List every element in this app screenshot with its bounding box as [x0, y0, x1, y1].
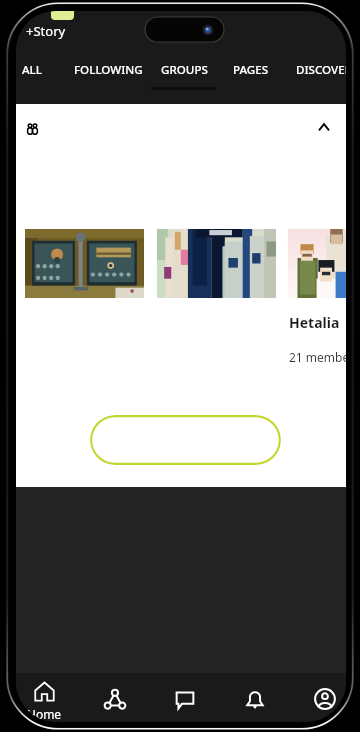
staticText: Hetalia: [289, 313, 340, 332]
button[interactable]: Network: [89, 673, 141, 722]
button[interactable]: [288, 229, 346, 298]
staticText: +Story: [26, 22, 66, 40]
staticText: FOLLOWING: [74, 62, 143, 78]
button[interactable]: Collapse: [312, 115, 336, 139]
button[interactable]: Home: [18, 673, 70, 722]
staticText: ALL: [22, 62, 42, 78]
staticText: GROUPS: [161, 62, 208, 78]
staticText: 21 members: [289, 349, 346, 365]
button[interactable]: DISCOVER: [296, 62, 346, 78]
button[interactable]: [25, 229, 144, 298]
button[interactable]: FOLLOWING: [74, 62, 143, 78]
staticText: DISCOVER: [296, 62, 346, 78]
staticText: PAGES: [233, 62, 269, 78]
staticText: Home: [27, 706, 62, 722]
button[interactable]: Account: [299, 673, 346, 722]
button[interactable]: ALL: [22, 62, 42, 78]
button[interactable]: PAGES: [233, 62, 269, 78]
button[interactable]: [157, 229, 276, 298]
button[interactable]: [90, 415, 281, 465]
button[interactable]: Notifications: [229, 673, 281, 722]
button[interactable]: Messages: [159, 673, 211, 722]
button[interactable]: GROUPS: [161, 62, 208, 78]
button[interactable]: Groups: [20, 116, 44, 140]
